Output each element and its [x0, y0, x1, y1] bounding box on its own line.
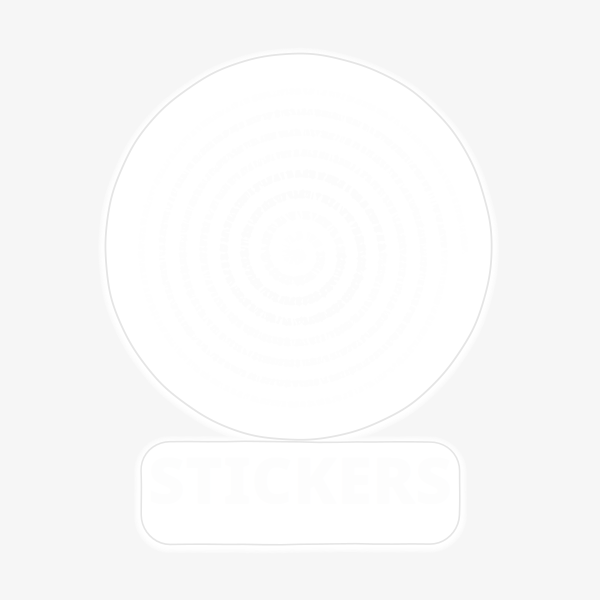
staticText: STICKERS: [148, 436, 452, 521]
button[interactable]: Spiral text sticker: [0, 0, 600, 600]
